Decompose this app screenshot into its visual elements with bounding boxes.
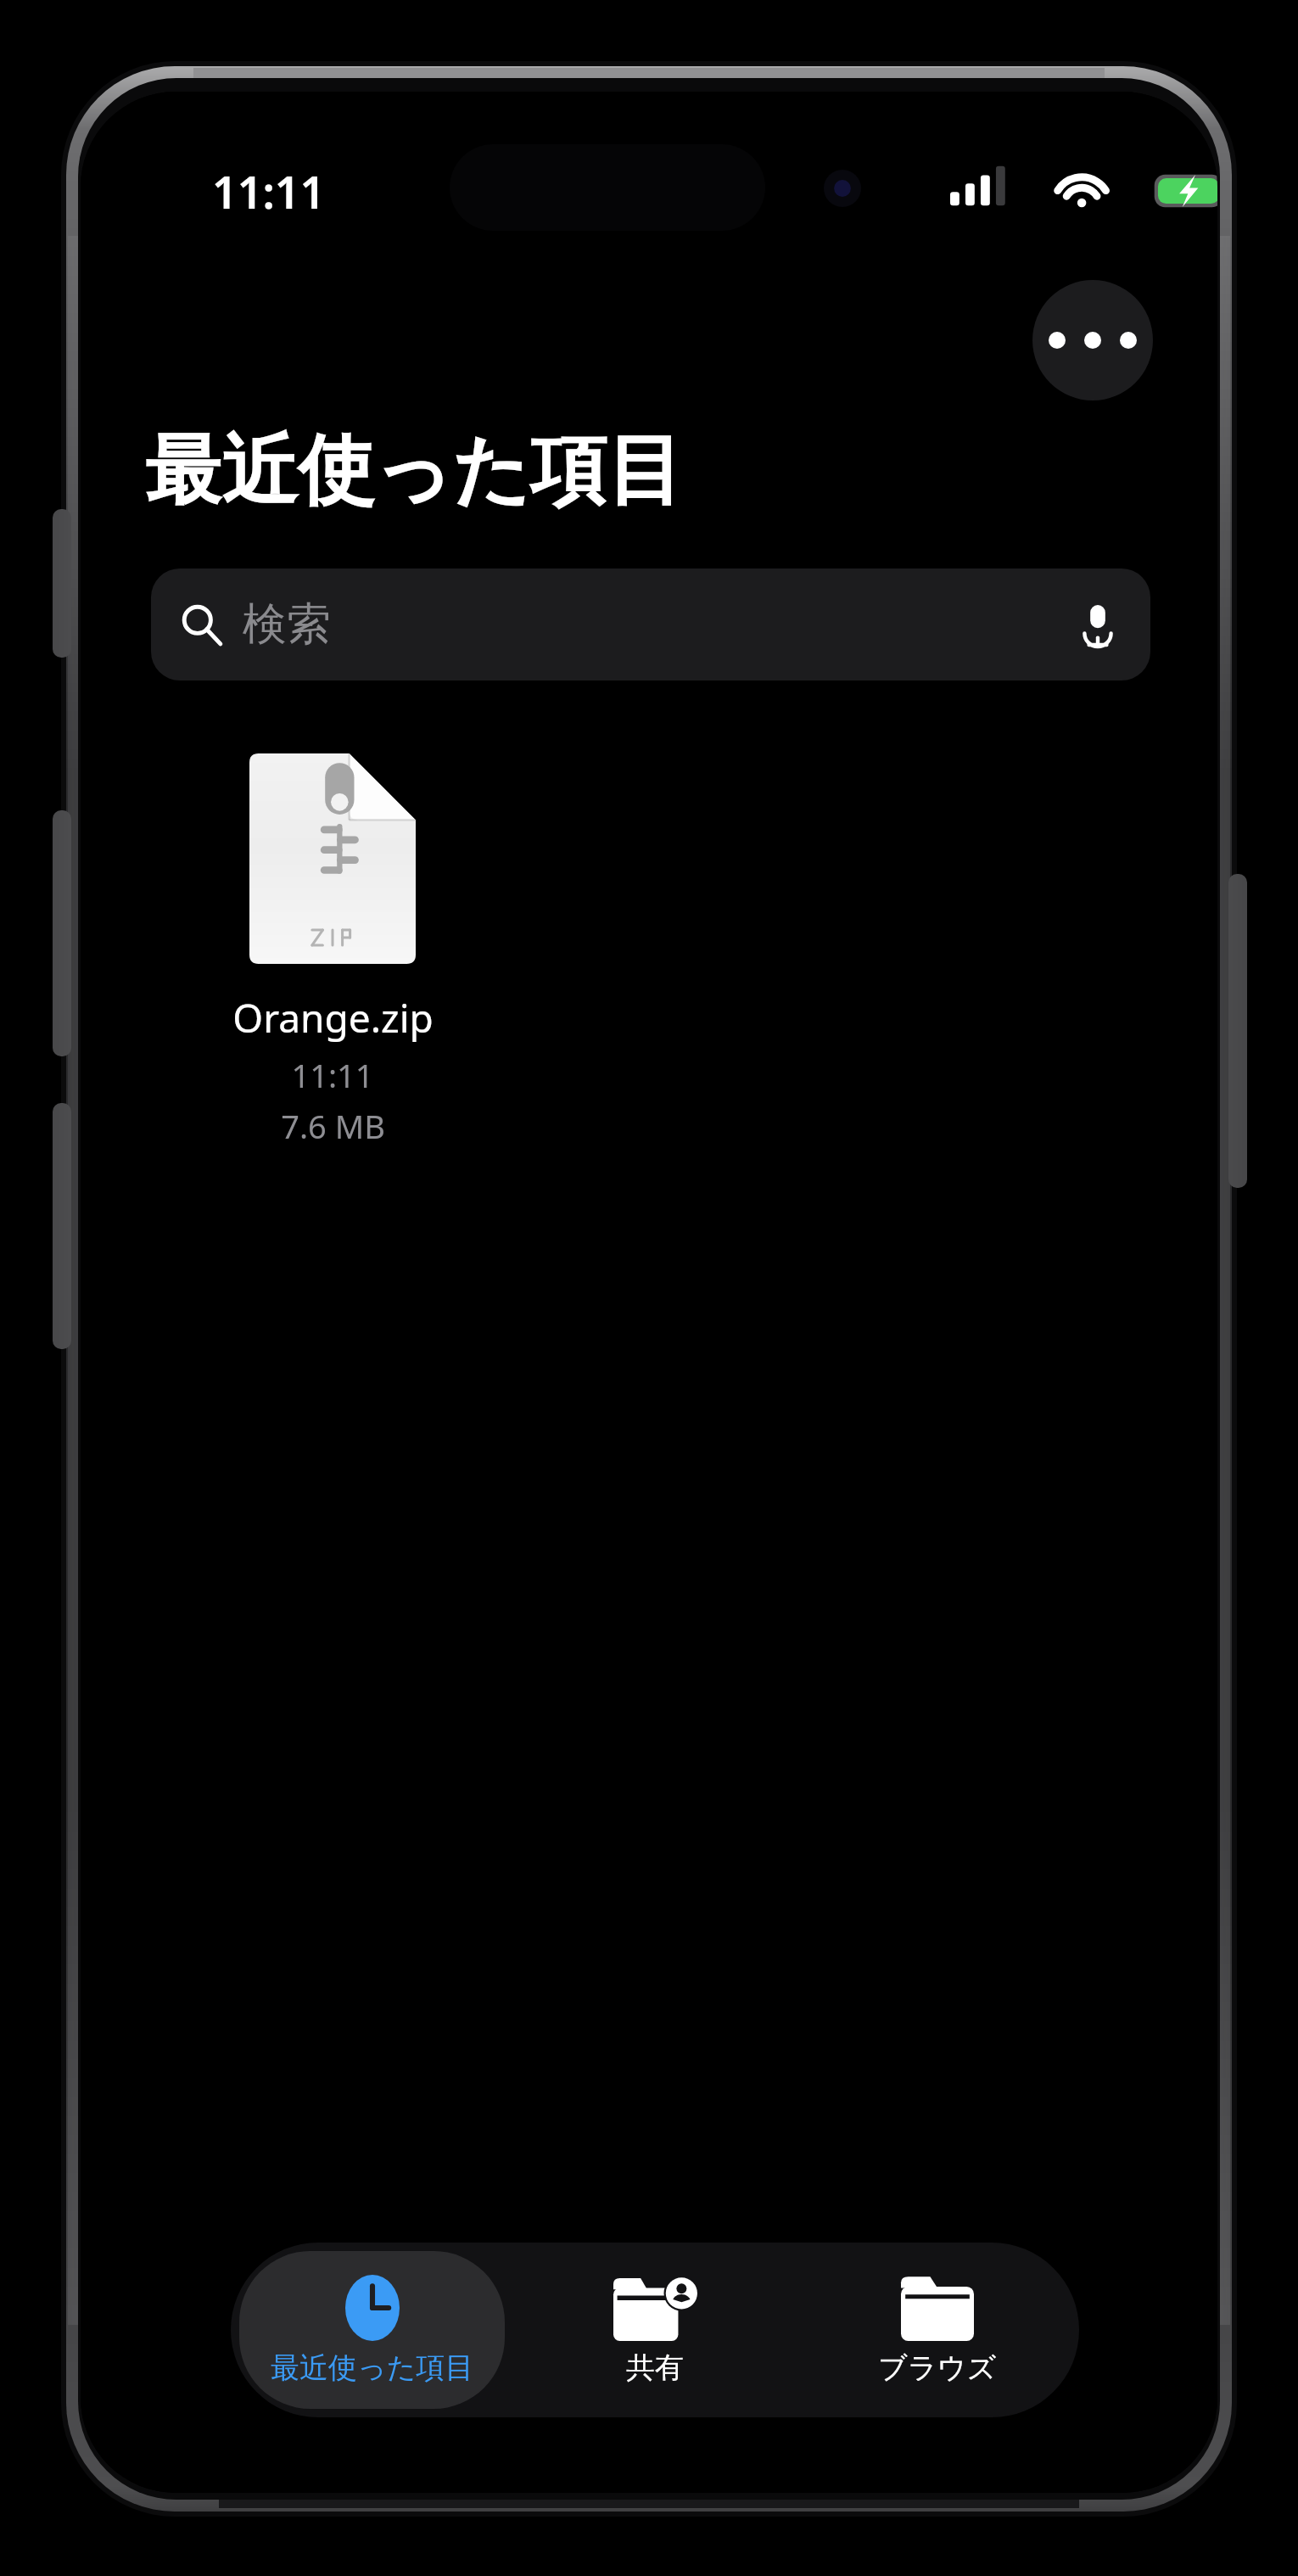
button[interactable]: 最近使った項目	[239, 2251, 505, 2409]
button[interactable]: 検索	[151, 568, 1150, 680]
staticText: Orange.zip	[232, 991, 434, 1044]
staticText: 最近使った項目	[145, 423, 684, 518]
staticText: 11:11	[212, 161, 326, 221]
staticText: 11:11	[291, 1053, 374, 1097]
staticText: ブラウズ	[878, 2349, 997, 2386]
button[interactable]: Voice search	[1074, 601, 1122, 648]
button[interactable]: ブラウズ	[796, 2243, 1079, 2417]
staticText: 検索	[243, 596, 331, 652]
button[interactable]: Orange.zip	[193, 753, 473, 1148]
staticText: 最近使った項目	[271, 2349, 474, 2386]
button[interactable]: 共有	[513, 2243, 796, 2417]
staticText: 共有	[626, 2349, 684, 2386]
staticText: 7.6 MB	[281, 1104, 385, 1148]
button[interactable]: More options	[1032, 280, 1153, 400]
